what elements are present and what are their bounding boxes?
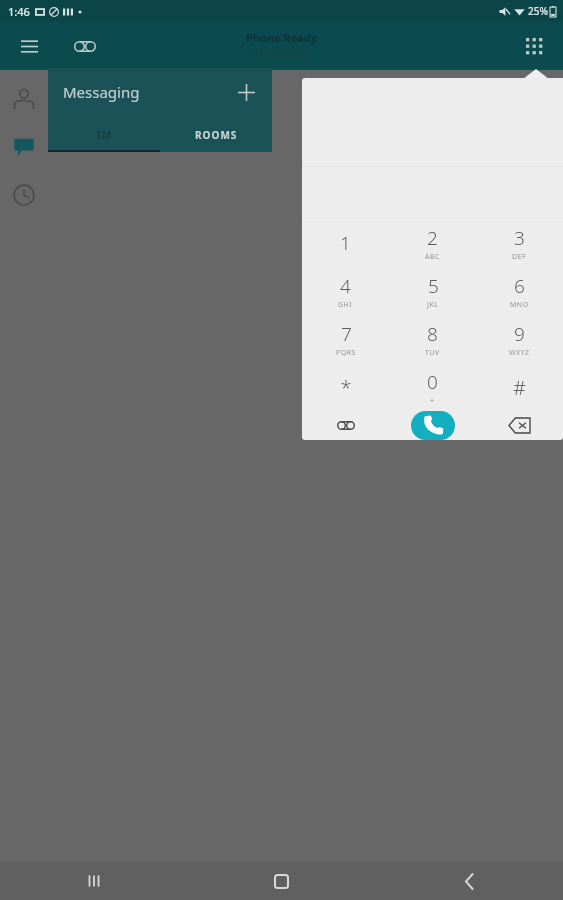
- staticText: 4: [340, 273, 351, 299]
- staticText: Messaging: [63, 82, 140, 102]
- button[interactable]: Open navigation menu: [14, 31, 44, 61]
- button[interactable]: IM: [48, 118, 160, 152]
- staticText: 7: [341, 321, 352, 347]
- staticText: WXYZ: [509, 348, 530, 358]
- staticText: MNO: [510, 300, 529, 310]
- button[interactable]: Back: [375, 862, 563, 900]
- button[interactable]: 2: [389, 219, 476, 267]
- button[interactable]: ROOMS: [160, 118, 272, 152]
- button[interactable]: Contacts: [3, 78, 45, 120]
- staticText: 6: [514, 273, 525, 299]
- staticText: ROOMS: [195, 128, 238, 142]
- staticText: 25%: [528, 4, 548, 18]
- button[interactable]: *: [302, 363, 389, 411]
- button[interactable]: Messages: [3, 126, 45, 168]
- staticText: IM: [97, 128, 112, 142]
- button[interactable]: Show dialpad: [517, 29, 551, 63]
- button[interactable]: 0: [389, 363, 476, 411]
- button[interactable]: 5: [389, 267, 476, 315]
- staticText: DEF: [512, 252, 527, 262]
- staticText: JKL: [427, 300, 439, 310]
- staticText: Phone Ready: [246, 30, 318, 45]
- staticText: *: [340, 374, 352, 401]
- staticText: TUV: [425, 348, 440, 358]
- staticText: ABC: [425, 252, 440, 262]
- button[interactable]: Voicemail: [68, 29, 102, 63]
- staticText: +: [430, 396, 435, 406]
- button[interactable]: Recent apps: [0, 862, 187, 900]
- staticText: 5: [428, 273, 439, 299]
- button[interactable]: 7: [302, 315, 389, 363]
- button[interactable]: Delete: [476, 411, 563, 440]
- button[interactable]: 4: [302, 267, 389, 315]
- staticText: 0: [427, 369, 438, 395]
- button[interactable]: Home: [187, 862, 375, 900]
- button[interactable]: Messaging: [48, 68, 272, 152]
- button[interactable]: 8: [389, 315, 476, 363]
- button[interactable]: 1: [302, 219, 389, 267]
- button[interactable]: 9: [476, 315, 563, 363]
- button[interactable]: 3: [476, 219, 563, 267]
- staticText: 9: [514, 321, 525, 347]
- staticText: #: [513, 374, 526, 401]
- button[interactable]: Call: [411, 411, 455, 440]
- button[interactable]: Recent calls: [3, 174, 45, 216]
- staticText: 8: [427, 321, 438, 347]
- button[interactable]: New message: [230, 76, 262, 108]
- staticText: 1: [340, 230, 351, 256]
- staticText: GHI: [338, 300, 353, 310]
- staticText: 1:46: [8, 4, 30, 19]
- button[interactable]: Call voicemail: [302, 411, 389, 440]
- button[interactable]: #: [476, 363, 563, 411]
- staticText: PQRS: [336, 348, 356, 358]
- button[interactable]: 6: [476, 267, 563, 315]
- staticText: 2: [427, 225, 438, 251]
- staticText: 3: [514, 225, 525, 251]
